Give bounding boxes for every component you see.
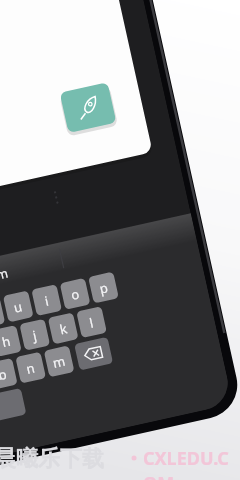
- button[interactable]: Phone chat screen photo: [0, 0, 240, 480]
